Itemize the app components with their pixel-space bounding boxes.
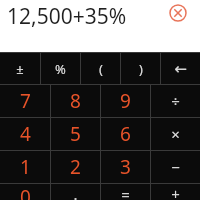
button[interactable]: Clear [166,1,190,25]
staticText: 8 [70,88,81,114]
button[interactable]: 3 [101,151,150,183]
staticText: ± [16,60,24,78]
staticText: ÷ [171,91,180,111]
button[interactable]: ÷ [151,85,200,117]
button[interactable]: 6 [101,118,150,150]
staticText: 6 [120,121,131,147]
staticText: ) [139,60,143,78]
button[interactable]: 2 [51,151,100,183]
button[interactable]: 9 [101,85,150,117]
button[interactable]: 4 [0,118,50,150]
button[interactable]: ± [0,53,40,84]
staticText: − [171,157,180,177]
staticText: % [55,60,66,78]
staticText: 12,500+35% [7,2,127,31]
button[interactable]: = [101,184,150,200]
staticText: 2 [70,154,81,180]
button[interactable]: × [151,118,200,150]
button[interactable]: − [151,151,200,183]
button[interactable]: ) [121,53,160,84]
button[interactable]: . [51,184,100,200]
button[interactable]: 0 [0,184,50,200]
staticText: . [73,184,78,200]
staticText: ← [174,60,187,77]
staticText: 0 [20,184,31,200]
staticText: + [171,184,180,200]
staticText: 9 [120,88,131,114]
button[interactable]: 7 [0,85,50,117]
button[interactable]: + [151,184,200,200]
button[interactable]: ( [81,53,120,84]
staticText: × [171,124,180,144]
staticText: ( [99,60,103,78]
button[interactable]: 8 [51,85,100,117]
button[interactable]: ← [161,53,200,84]
staticText: 5 [70,121,81,147]
staticText: 7 [20,88,31,114]
staticText: 1 [20,154,31,180]
staticText: 4 [20,121,31,147]
button[interactable]: % [41,53,80,84]
staticText: 3 [120,154,131,180]
button[interactable]: 5 [51,118,100,150]
button[interactable]: 1 [0,151,50,183]
staticText: = [121,184,130,200]
